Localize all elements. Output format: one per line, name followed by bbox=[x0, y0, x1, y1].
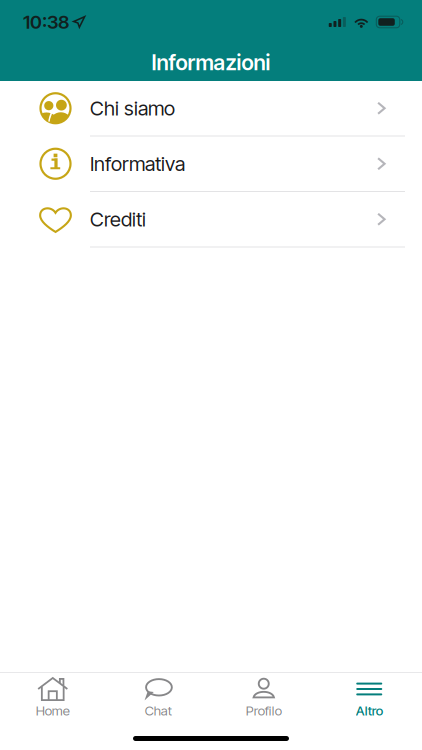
staticText: Home bbox=[36, 702, 70, 719]
staticText: Chi siamo bbox=[90, 96, 175, 120]
staticText: Chat bbox=[145, 702, 172, 719]
button[interactable]: Informativa bbox=[0, 136, 422, 192]
button[interactable]: Profilo bbox=[211, 673, 316, 719]
button[interactable]: Altro bbox=[316, 673, 422, 719]
staticText: Informazioni bbox=[151, 50, 270, 75]
staticText: Crediti bbox=[90, 207, 146, 231]
staticText: Profilo bbox=[246, 702, 282, 719]
button[interactable]: Chi siamo bbox=[0, 81, 422, 136]
button[interactable]: Home bbox=[0, 673, 105, 719]
button[interactable]: Chat bbox=[105, 673, 211, 719]
staticText: Altro bbox=[356, 702, 383, 719]
button[interactable]: Crediti bbox=[0, 192, 422, 247]
staticText: 10:38 bbox=[23, 11, 69, 33]
staticText: Informativa bbox=[90, 152, 185, 176]
